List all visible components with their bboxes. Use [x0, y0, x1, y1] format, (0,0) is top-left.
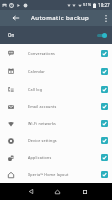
staticText: Wi-Fi networks [28, 121, 56, 126]
staticText: On [8, 32, 15, 38]
button[interactable]: Navigate up [0, 10, 31, 26]
button[interactable]: Applications [0, 149, 112, 166]
button[interactable]: Conversations [0, 44, 112, 62]
button[interactable]: Device settings [0, 132, 112, 149]
staticText: Call log [28, 87, 43, 92]
button[interactable]: Email accounts [0, 98, 112, 115]
button[interactable]: Home [51, 183, 64, 200]
staticText: Calendar [28, 69, 46, 74]
staticText: Applications [28, 155, 52, 160]
staticText: 18:27 [98, 2, 110, 8]
button[interactable]: Recent apps [78, 183, 91, 200]
staticText: Email accounts [28, 104, 57, 109]
button[interactable]: Back [24, 183, 37, 200]
button[interactable]: On [0, 26, 112, 44]
button[interactable]: Calendar [0, 62, 112, 80]
staticText: 51% [83, 2, 92, 8]
button[interactable]: More options [100, 10, 112, 26]
staticText: Xperia™ Home layout [28, 172, 69, 177]
staticText: Device settings [28, 138, 57, 143]
button[interactable]: Call log [0, 80, 112, 98]
staticText: Automatic backup [31, 14, 90, 22]
staticText: Conversations [28, 51, 56, 56]
button[interactable]: Wi-Fi networks [0, 115, 112, 132]
button[interactable]: Xperia™ Home layout [0, 166, 112, 183]
